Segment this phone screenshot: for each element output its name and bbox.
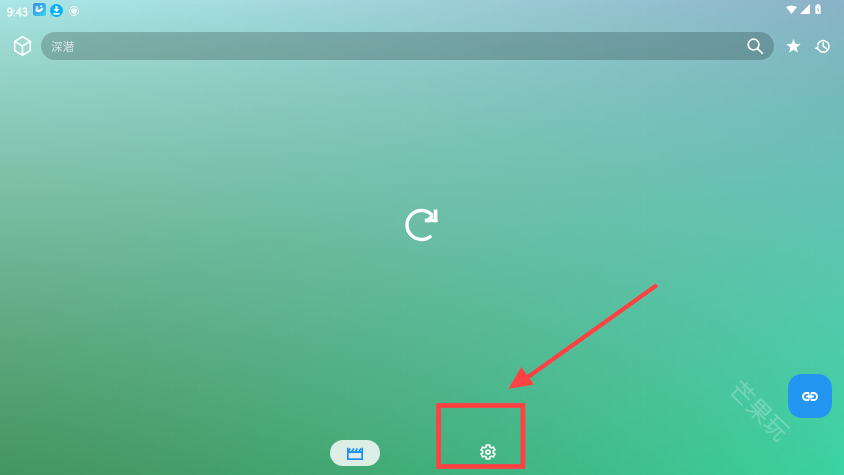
button[interactable]: Search [746,37,764,55]
button[interactable]: Apps [8,32,36,60]
staticText: 9:43 [7,3,28,20]
staticText: 深潜 [51,38,74,55]
button[interactable]: Favorites [780,33,806,59]
button[interactable]: History [809,33,835,59]
button[interactable]: 深潜 [41,32,774,60]
button[interactable]: Video [330,440,380,466]
button[interactable]: Link [788,374,832,418]
staticText: 芒果玩 [724,372,798,446]
button[interactable]: Settings [475,439,501,465]
